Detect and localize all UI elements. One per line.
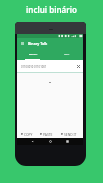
button[interactable]: PASTE — [40, 132, 53, 136]
button[interactable]: SEND IT — [61, 132, 77, 136]
button[interactable]: BINARY — [17, 48, 50, 60]
staticText: TEXT — [64, 53, 70, 56]
button[interactable]: COPY — [21, 132, 33, 136]
staticText: COPY — [24, 132, 33, 136]
staticText: inclui binário — [0, 4, 103, 15]
button[interactable]: Menu — [17, 38, 83, 48]
button[interactable]: Recents — [66, 140, 69, 143]
button[interactable]: TEXT — [50, 48, 83, 60]
staticText: SEND IT — [64, 132, 77, 136]
staticText: 01100010 01101001 — [21, 65, 77, 69]
staticText: BINARY — [29, 53, 38, 56]
button[interactable]: Home — [49, 140, 52, 143]
staticText: Binary Talk — [28, 41, 48, 46]
staticText: PASTE — [43, 132, 53, 136]
button[interactable]: Clear — [77, 65, 80, 68]
button[interactable]: Back — [31, 140, 34, 143]
